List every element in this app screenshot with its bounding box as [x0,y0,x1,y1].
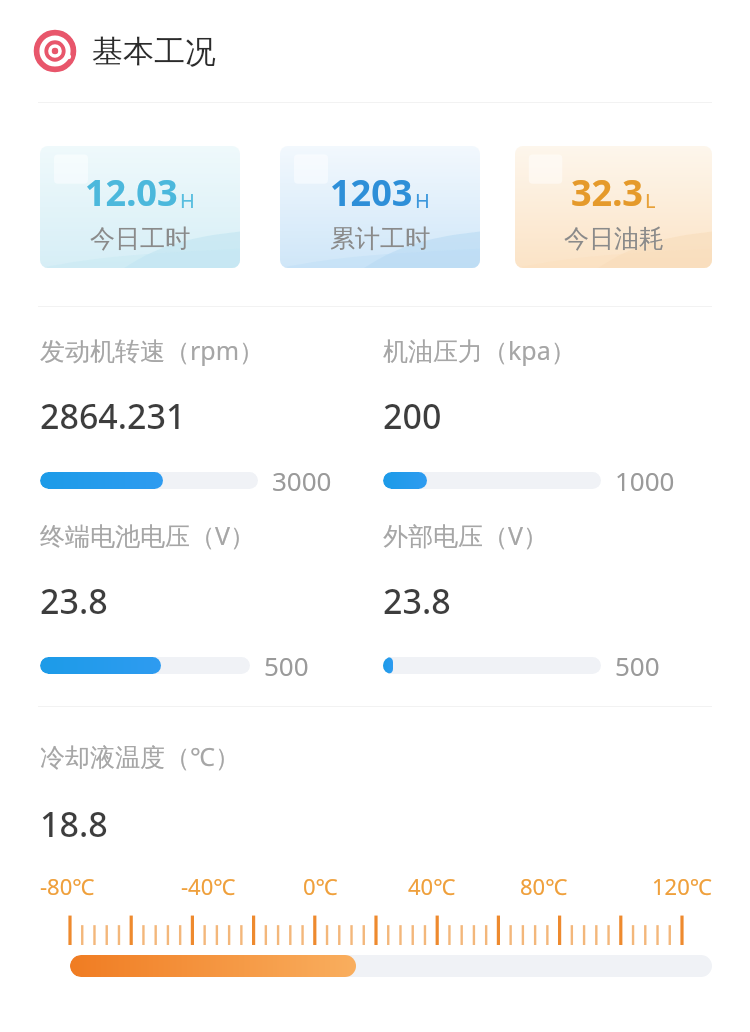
staticText: 2864.231 [40,393,186,439]
staticText: 今日工时 [90,223,190,254]
button[interactable] [70,955,712,977]
staticText: 3000 [272,463,332,498]
staticText: H [180,187,195,214]
staticText: 累计工时 [330,223,430,254]
button[interactable]: 外部电压（V） [383,518,750,683]
staticText: 今日油耗 [564,223,664,254]
button[interactable]: 1203 [280,146,480,268]
staticText: 32.3 [571,168,643,217]
staticText: -40℃ [181,871,236,901]
button[interactable]: 终端电池电压（V） [40,518,375,683]
staticText: 500 [264,648,309,683]
staticText: 40℃ [408,871,456,901]
staticText: 外部电压（V） [383,518,549,552]
staticText: 1203 [330,168,413,217]
staticText: 23.8 [40,578,108,624]
button[interactable]: 机油压力（kpa） [383,333,750,498]
staticText: -80℃ [40,871,95,901]
staticText: 12.03 [85,168,178,217]
staticText: 基本工况 [92,32,216,71]
staticText: H [415,187,430,214]
other: Basic status [36,32,74,70]
staticText: 80℃ [520,871,568,901]
staticText: 1000 [615,463,675,498]
staticText: 18.8 [40,801,108,847]
staticText: 发动机转速（rpm） [40,333,265,367]
button[interactable]: 32.3 [515,146,712,268]
button[interactable]: 发动机转速（rpm） [40,333,375,498]
staticText: 500 [615,648,660,683]
staticText: 0℃ [303,871,338,901]
staticText: 120℃ [652,871,712,901]
staticText: 机油压力（kpa） [383,333,576,367]
staticText: 冷却液温度（℃） [40,739,240,773]
button[interactable]: 12.03 [40,146,240,268]
staticText: L [645,187,656,214]
staticText: 200 [383,393,442,439]
staticText: 23.8 [383,578,451,624]
staticText: 终端电池电压（V） [40,518,256,552]
button[interactable]: Basic status [0,0,750,102]
